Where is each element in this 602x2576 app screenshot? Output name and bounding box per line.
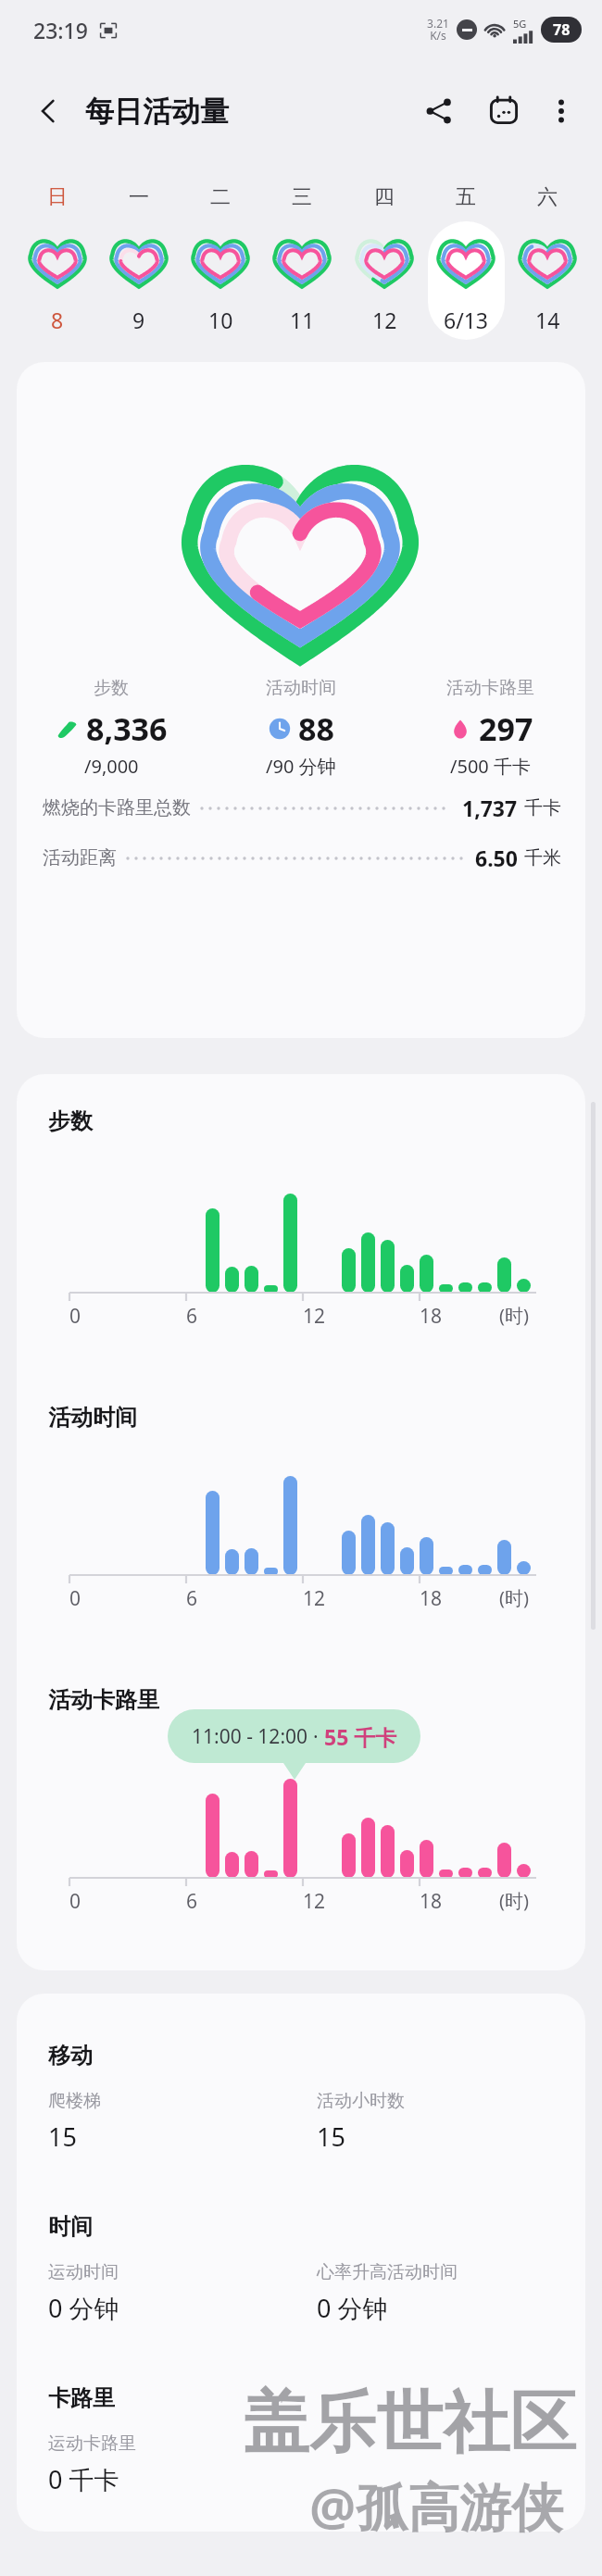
staticText: 8 [51,306,64,334]
staticText: 11 [290,306,315,334]
staticText: 18 [420,1888,443,1915]
staticText: 0 [69,1888,82,1915]
button[interactable]: 五 [425,176,507,333]
staticText: 0 分钟 [48,2291,119,2325]
button[interactable]: 四 [344,176,425,333]
staticText: 78 [553,19,571,40]
staticText: 0 [69,1303,82,1330]
button[interactable]: Back [24,87,72,135]
staticText: 12 [372,306,397,334]
staticText: 时间 [48,2213,93,2241]
staticText: 活动时间 [48,1404,137,1432]
staticText: 6.50 [475,844,518,872]
staticText: (时) [499,1303,529,1328]
staticText: 11:00 - 12:00 [192,1723,313,1750]
staticText: 步数 [94,677,129,699]
staticText: 55 千卡 [324,1722,397,1751]
button[interactable]: 日 [17,176,98,333]
staticText: 18 [420,1303,443,1330]
staticText: 活动时间 [266,677,336,699]
staticText: 一 [129,184,149,210]
staticText: 297 [479,707,533,750]
staticText: 12 [303,1303,326,1330]
button[interactable]: More options [539,89,583,133]
staticText: 每日活动量 [85,94,229,130]
staticText: 活动卡路里 [48,1686,159,1714]
staticText: 0 分钟 [317,2291,388,2325]
staticText: 6 [186,1888,198,1915]
staticText: 六 [537,184,558,210]
staticText: /500 千卡 [450,754,531,779]
button[interactable]: 一 [98,176,180,333]
staticText: 15 [48,2120,77,2154]
staticText: 二 [210,184,231,210]
staticText: 23:19 [33,16,88,44]
staticText: 日 [47,184,68,210]
staticText: 五 [456,184,476,210]
staticText: 卡路里 [48,2384,115,2412]
staticText: 四 [374,184,395,210]
staticText: 步数 [48,1107,93,1135]
staticText: 12 [303,1585,326,1612]
staticText: 三 [292,184,312,210]
staticText: 盖乐世社区 [243,2382,576,2466]
staticText: (时) [499,1585,529,1610]
staticText: /90 分钟 [266,754,336,779]
button[interactable]: 二 [180,176,261,333]
staticText: 18 [420,1585,443,1612]
staticText: 12 [303,1888,326,1915]
staticText: 6 [186,1585,198,1612]
staticText: 8,336 [86,707,168,750]
staticText: 心率升高活动时间 [317,2261,458,2283]
staticText: 活动小时数 [317,2090,405,2112]
staticText: 15 [317,2120,345,2154]
staticText: 0 千卡 [48,2462,119,2496]
button[interactable]: 步数 [17,362,585,1038]
staticText: 燃烧的卡路里总数 [43,796,191,819]
staticText: 移动 [48,2042,93,2070]
staticText: 爬楼梯 [48,2090,101,2112]
staticText: (时) [499,1888,529,1913]
staticText: 1,737 [462,794,518,822]
staticText: @孤高游侠 [309,2470,564,2541]
staticText: 10 [208,306,233,334]
button[interactable]: 三 [261,176,343,333]
staticText: 88 [298,707,334,750]
staticText: 0 [69,1585,82,1612]
staticText: 6 [186,1303,198,1330]
staticText: 千米 [524,846,561,869]
staticText: · [313,1723,324,1750]
button[interactable]: Calendar [480,87,528,135]
staticText: 3.21 K/s [427,16,449,44]
staticText: 6/13 [444,306,489,334]
staticText: 运动卡路里 [48,2432,136,2455]
staticText: /9,000 [84,754,139,779]
button[interactable]: 六 [507,176,588,333]
staticText: 活动距离 [43,846,117,869]
staticText: 5G [513,17,527,31]
staticText: 千卡 [524,796,561,819]
staticText: 运动时间 [48,2261,119,2283]
staticText: 14 [535,306,560,334]
button[interactable]: Share [415,87,463,135]
staticText: 活动卡路里 [446,677,534,699]
staticText: 9 [132,306,145,334]
